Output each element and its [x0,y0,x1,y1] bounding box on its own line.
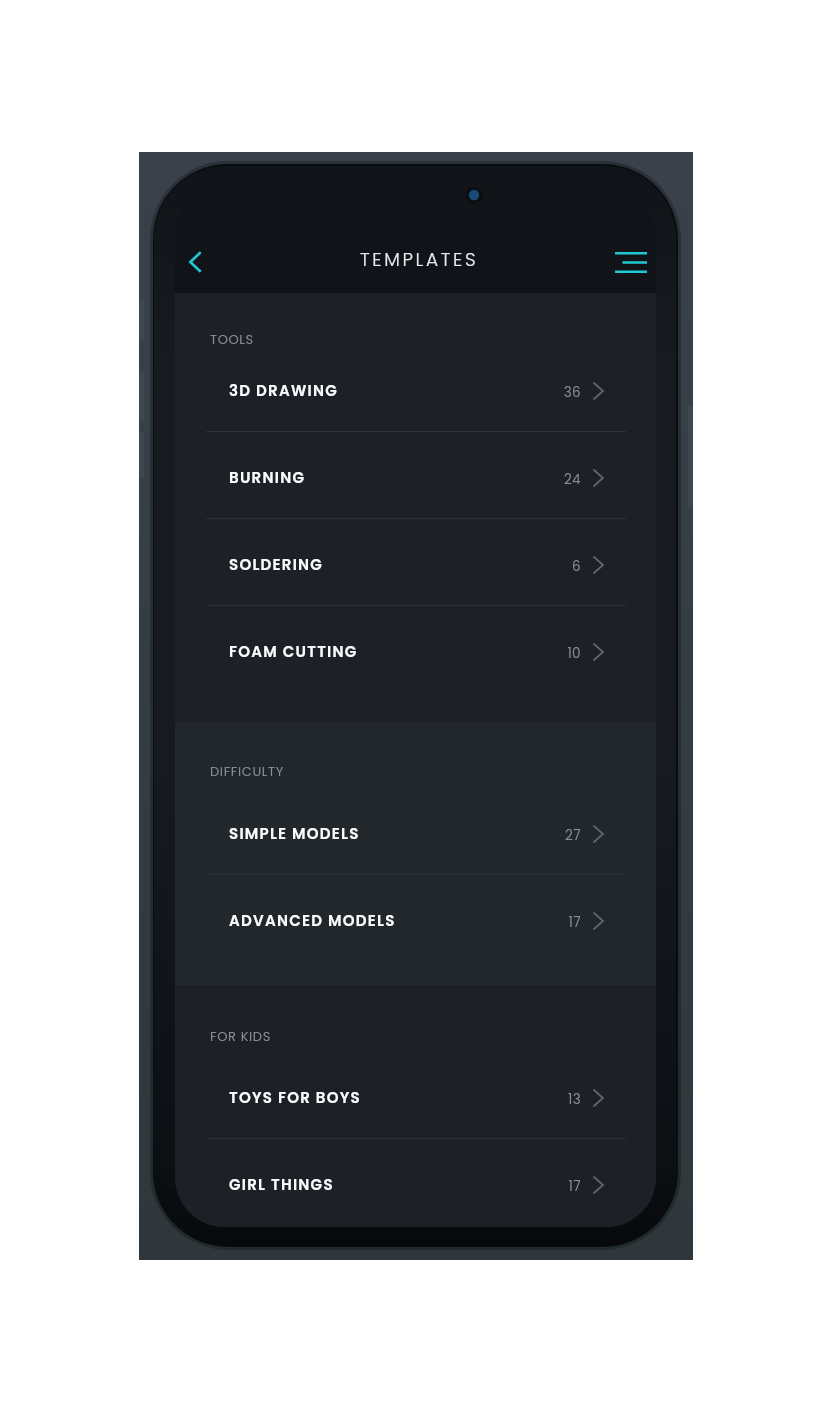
button[interactable]: BURNING [175,434,656,521]
staticText: TOYS FOR BOYS [229,1087,361,1108]
button[interactable]: GIRL THINGS [175,1141,656,1227]
staticText: 24 [563,470,581,489]
button[interactable]: TOYS FOR BOYS [175,1054,656,1141]
staticText: 17 [568,913,581,932]
button[interactable]: SIMPLE MODELS [175,790,656,877]
button[interactable]: Menu [607,238,655,286]
button[interactable]: FOAM CUTTING [175,608,656,695]
staticText: ADVANCED MODELS [229,910,396,931]
staticText: BURNING [229,467,306,488]
staticText: TEMPLATES [360,247,479,273]
staticText: SOLDERING [229,554,324,575]
staticText: 17 [568,1177,581,1196]
staticText: 36 [563,383,581,402]
staticText: 13 [567,1090,581,1109]
button[interactable]: Back [175,238,219,286]
staticText: 3D DRAWING [229,380,338,401]
button[interactable]: ADVANCED MODELS [175,877,656,964]
staticText: FOR KIDS [210,1027,271,1045]
staticText: FOAM CUTTING [229,641,358,662]
staticText: SIMPLE MODELS [229,823,360,844]
button[interactable]: SOLDERING [175,521,656,608]
staticText: GIRL THINGS [229,1174,334,1195]
staticText: 6 [572,557,581,576]
button[interactable]: 3D DRAWING [175,347,656,434]
staticText: DIFFICULTY [210,762,284,780]
staticText: TOOLS [210,330,254,348]
staticText: 27 [565,826,581,845]
staticText: 10 [567,644,581,663]
